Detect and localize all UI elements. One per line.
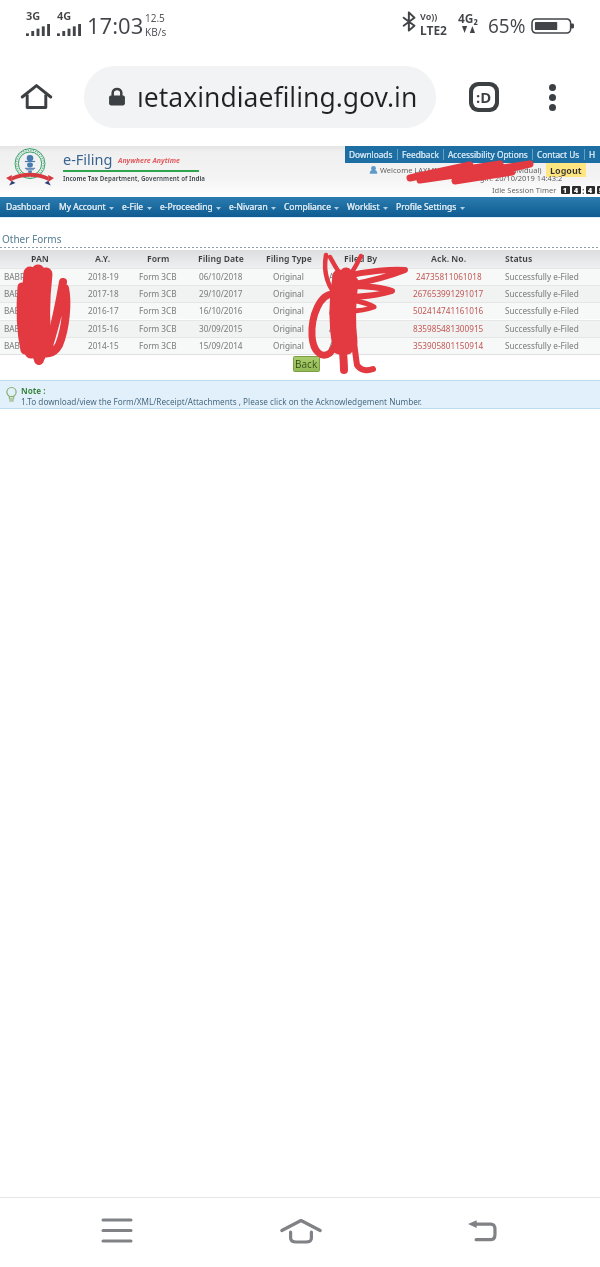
staticText: Accessibility Options bbox=[448, 149, 528, 160]
staticText: KB/s bbox=[145, 25, 167, 39]
staticText: Form 3CB bbox=[139, 271, 177, 282]
staticText: 2015-16 bbox=[88, 323, 119, 334]
staticText: BABP bbox=[4, 305, 25, 316]
staticText: Form 3CB bbox=[139, 288, 177, 299]
staticText: Filing Type bbox=[266, 253, 312, 265]
staticText: 15/09/2014 bbox=[199, 340, 243, 351]
staticText: Status bbox=[505, 253, 533, 265]
staticText: 1.To download/view the Form/XML/Receipt/… bbox=[21, 396, 423, 407]
staticText: LTE2 bbox=[420, 22, 447, 38]
button[interactable]: Accessibility Options bbox=[444, 146, 532, 163]
staticText: Anywhere Anytime bbox=[118, 156, 180, 166]
button[interactable]: More options bbox=[532, 77, 572, 117]
staticText: Form 3CB bbox=[139, 323, 177, 334]
button[interactable]: Worklist bbox=[343, 197, 392, 217]
staticText: AR bbox=[329, 271, 340, 282]
staticText: Welcome LAXMI NGH (Individual) bbox=[380, 165, 542, 175]
button[interactable]: BABPS Q bbox=[0, 268, 600, 285]
staticText: Form 3CB bbox=[139, 340, 177, 351]
staticText: 835985481300915 bbox=[413, 323, 484, 334]
staticText: Successfully e-Filed bbox=[505, 271, 579, 282]
button[interactable]: Compliance bbox=[280, 197, 343, 217]
staticText: AR bbox=[329, 340, 340, 351]
staticText: Successfully e-Filed bbox=[505, 340, 579, 351]
button[interactable]: BABP bbox=[0, 302, 600, 319]
staticText: 16/10/2016 bbox=[199, 305, 243, 316]
staticText: 2016-17 bbox=[88, 305, 119, 316]
staticText: Compliance bbox=[284, 201, 331, 213]
staticText: Original bbox=[273, 288, 304, 299]
staticText: Worklist bbox=[347, 201, 380, 213]
button[interactable]: BABP Q bbox=[0, 285, 600, 302]
button[interactable]: My Account bbox=[55, 197, 118, 217]
staticText: Vo)) bbox=[420, 10, 438, 22]
staticText: 1 bbox=[563, 186, 568, 194]
staticText: 30/09/2015 bbox=[199, 323, 243, 334]
staticText: 4G₂ bbox=[458, 10, 479, 26]
staticText: 267653991291017 bbox=[413, 288, 484, 299]
button[interactable]: Tabs bbox=[464, 77, 504, 117]
staticText: Original bbox=[273, 323, 304, 334]
button[interactable]: Help bbox=[585, 146, 600, 163]
staticText: ıetaxindiaefiling.gov.in bbox=[137, 79, 418, 115]
button[interactable]: Home bbox=[267, 1201, 334, 1259]
staticText: Dashboard bbox=[6, 201, 51, 213]
button[interactable]: Dashboard bbox=[2, 197, 55, 217]
staticText: e-Proceeding bbox=[160, 201, 213, 213]
staticText: Downloads bbox=[349, 149, 393, 160]
staticText: Logout bbox=[550, 164, 582, 176]
staticText: 2017-18 bbox=[88, 288, 119, 299]
staticText: Successfully e-Filed bbox=[505, 305, 579, 316]
staticText: 3G bbox=[26, 8, 41, 23]
staticText: My Account bbox=[59, 201, 106, 213]
staticText: e-Filing bbox=[63, 149, 113, 169]
staticText: Income Tax Department, Government of Ind… bbox=[63, 174, 205, 182]
staticText: 24735811061018 bbox=[416, 271, 482, 282]
staticText: 65% bbox=[488, 13, 526, 39]
staticText: 4G bbox=[57, 8, 72, 23]
button[interactable]: Feedback bbox=[398, 146, 443, 163]
button[interactable]: e-Proceeding bbox=[156, 197, 225, 217]
staticText: 353905801150914 bbox=[413, 340, 484, 351]
staticText: 502414741161016 bbox=[413, 305, 484, 316]
button[interactable]: BABP bbox=[0, 337, 600, 354]
staticText: Help bbox=[589, 149, 596, 160]
button[interactable]: Recent apps bbox=[84, 1201, 150, 1259]
staticText: Form bbox=[147, 253, 170, 265]
button[interactable]: e-File bbox=[118, 197, 156, 217]
staticText: Original bbox=[273, 271, 304, 282]
staticText: BABP Q bbox=[4, 288, 47, 299]
staticText: 2018-19 bbox=[88, 271, 119, 282]
staticText: Profile Settings bbox=[396, 201, 457, 213]
staticText: BABP bbox=[4, 340, 25, 351]
staticText: 29/10/2017 bbox=[199, 288, 243, 299]
button[interactable]: Logout bbox=[546, 163, 586, 177]
staticText: :D bbox=[476, 87, 492, 107]
staticText: Successfully e-Filed bbox=[505, 288, 579, 299]
button[interactable]: Profile Settings bbox=[392, 197, 469, 217]
staticText: Original bbox=[273, 340, 304, 351]
staticText: PAN bbox=[31, 253, 49, 265]
staticText: 06/10/2018 bbox=[199, 271, 243, 282]
staticText: A.Y. bbox=[95, 253, 111, 265]
staticText: : bbox=[582, 184, 585, 196]
staticText: 5 bbox=[599, 186, 600, 194]
staticText: Original bbox=[273, 305, 304, 316]
button[interactable]: Contact Us bbox=[533, 146, 584, 163]
button[interactable]: BABP bbox=[0, 320, 600, 337]
staticText: BABP bbox=[4, 323, 25, 334]
staticText: AR bbox=[329, 323, 340, 334]
button[interactable]: Back bbox=[449, 1201, 516, 1259]
staticText: 2014-15 bbox=[88, 340, 119, 351]
staticText: Filed By bbox=[344, 253, 378, 265]
staticText: Contact Us bbox=[537, 149, 580, 160]
button[interactable]: Home bbox=[16, 77, 56, 117]
staticText: 12.5 bbox=[145, 11, 165, 25]
staticText: 4 bbox=[574, 186, 579, 194]
button[interactable]: ıetaxindiaefiling.gov.in bbox=[84, 66, 436, 128]
staticText: BABPS Q bbox=[4, 271, 49, 282]
button[interactable]: Back bbox=[294, 357, 319, 371]
button[interactable]: Downloads bbox=[345, 146, 397, 163]
staticText: 17:03 bbox=[87, 10, 144, 40]
button[interactable]: e-Nivaran bbox=[225, 197, 280, 217]
